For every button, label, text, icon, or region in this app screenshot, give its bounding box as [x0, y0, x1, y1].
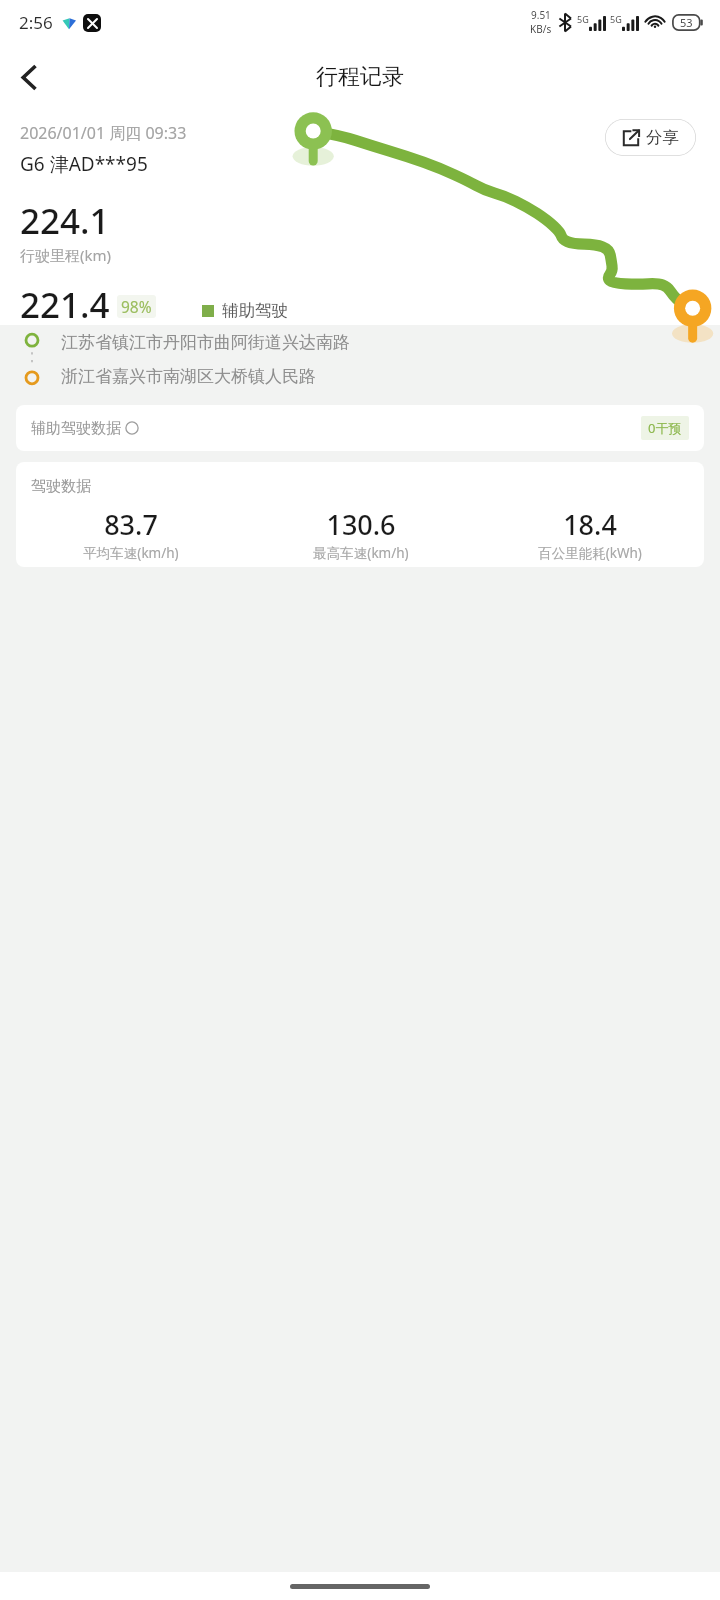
- staticText: 98%: [121, 296, 152, 317]
- staticText: 224.1: [20, 197, 110, 245]
- staticText: 130.6: [326, 506, 396, 543]
- staticText: 最高车速(km/h): [313, 544, 409, 562]
- staticText: KB/s: [530, 22, 552, 36]
- staticText: 5G: [610, 13, 622, 25]
- staticText: 9.51: [531, 8, 551, 22]
- staticText: 221.4: [20, 281, 110, 325]
- staticText: 18.4: [563, 506, 617, 543]
- staticText: 0干预: [648, 419, 682, 437]
- staticText: 江苏省镇江市丹阳市曲阿街道兴达南路: [61, 332, 350, 353]
- staticText: 2026/01/01 周四 09:33: [20, 122, 187, 144]
- staticText: 辅助驾驶数据: [31, 419, 121, 438]
- staticText: 浙江省嘉兴市南湖区大桥镇人民路: [61, 366, 316, 387]
- staticText: 53: [680, 15, 693, 30]
- staticText: 83.7: [104, 506, 158, 543]
- staticText: 百公里能耗(kWh): [538, 544, 642, 562]
- staticText: 行程记录: [316, 63, 404, 91]
- staticText: 辅助驾驶: [222, 300, 288, 321]
- button[interactable]: 辅助驾驶数据: [16, 405, 704, 451]
- staticText: 平均车速(km/h): [83, 544, 179, 562]
- staticText: G6 津AD***95: [20, 151, 148, 177]
- staticText: 行驶里程(km): [20, 245, 112, 265]
- button[interactable]: 分享: [605, 119, 696, 156]
- staticText: 2:56: [19, 11, 53, 34]
- staticText: 分享: [646, 127, 679, 148]
- button[interactable]: 返回: [0, 48, 58, 106]
- staticText: 5G: [577, 13, 589, 25]
- staticText: 驾驶数据: [31, 477, 91, 496]
